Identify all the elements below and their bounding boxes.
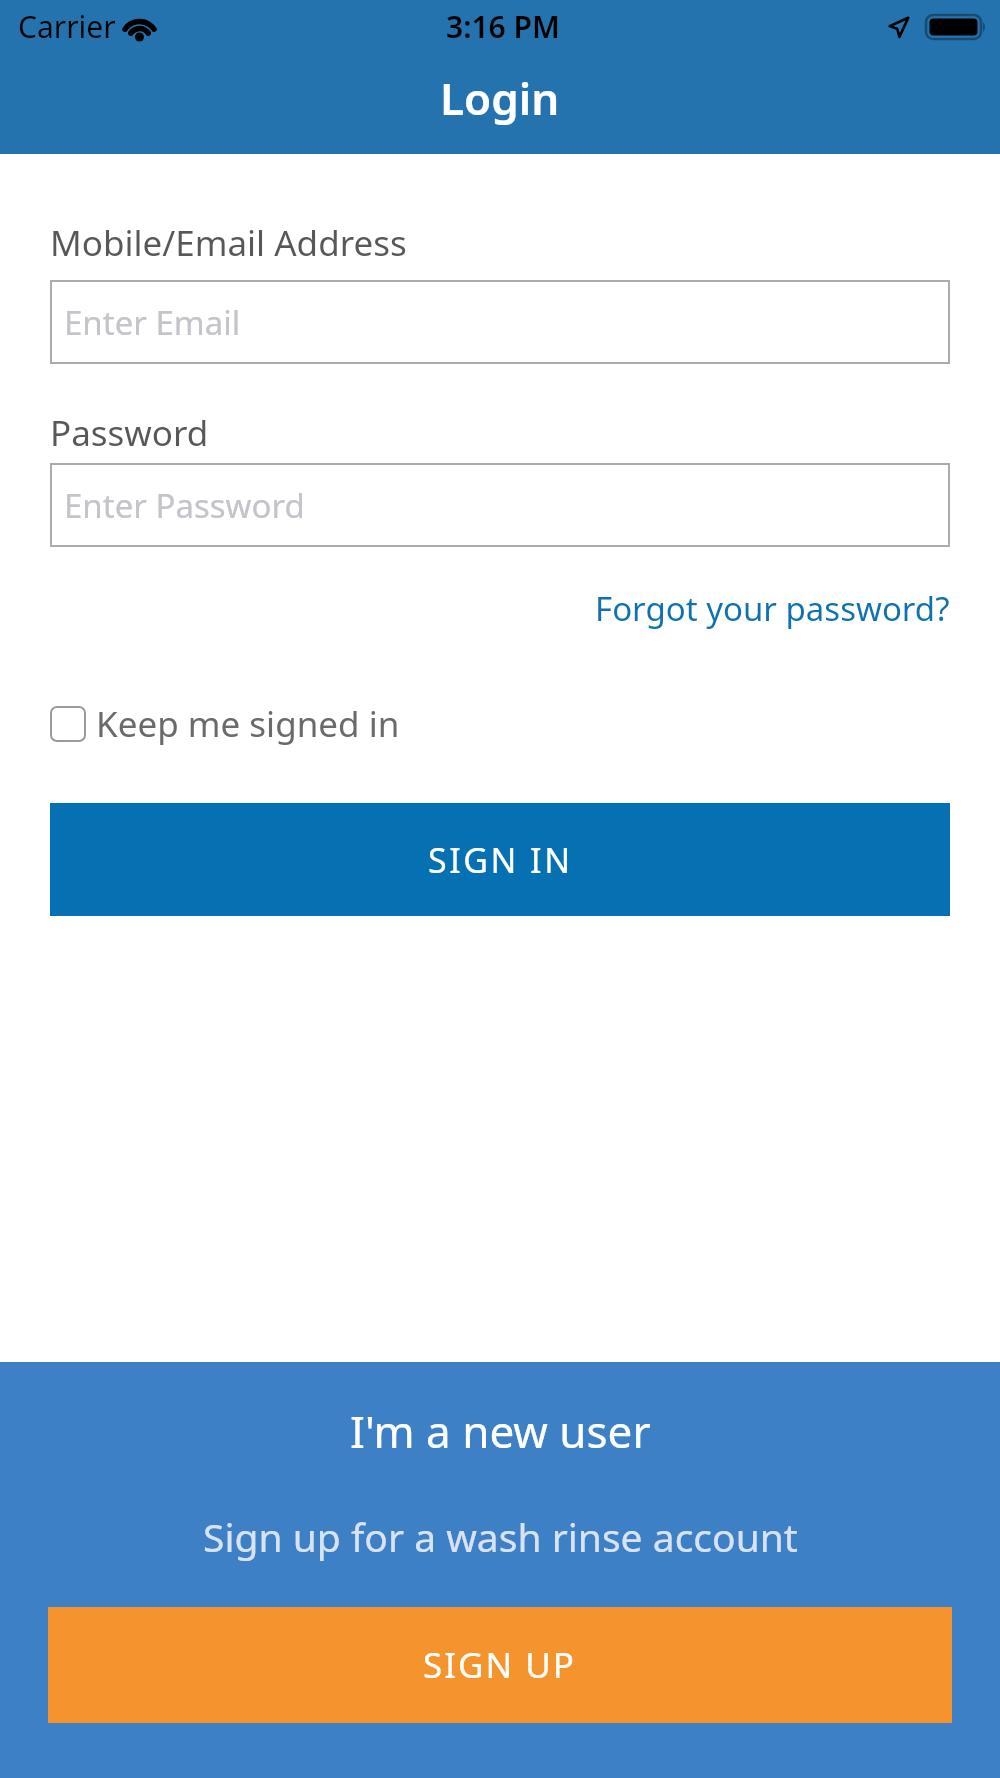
- staticText: SIGN UP: [423, 1641, 577, 1689]
- staticText: SIGN IN: [428, 837, 573, 883]
- staticText: I'm a new user: [350, 1401, 651, 1461]
- button[interactable]: Enter Password: [50, 463, 950, 547]
- button[interactable]: SIGN IN: [50, 803, 950, 916]
- staticText: Carrier: [18, 6, 116, 47]
- button[interactable]: Forgot your password?: [595, 586, 950, 631]
- button[interactable]: Enter Email: [50, 280, 950, 364]
- staticText: Sign up for a wash rinse account: [203, 1510, 798, 1563]
- staticText: Enter Email: [64, 300, 241, 345]
- staticText: Login: [440, 68, 560, 128]
- staticText: Password: [50, 409, 209, 457]
- staticText: Enter Password: [64, 483, 305, 528]
- button[interactable]: SIGN UP: [48, 1607, 952, 1723]
- staticText: Forgot your password?: [595, 586, 950, 631]
- staticText: 3:16 PM: [446, 6, 560, 47]
- button[interactable]: Keep me signed in: [50, 700, 400, 748]
- staticText: Mobile/Email Address: [50, 219, 407, 267]
- staticText: Keep me signed in: [96, 700, 400, 748]
